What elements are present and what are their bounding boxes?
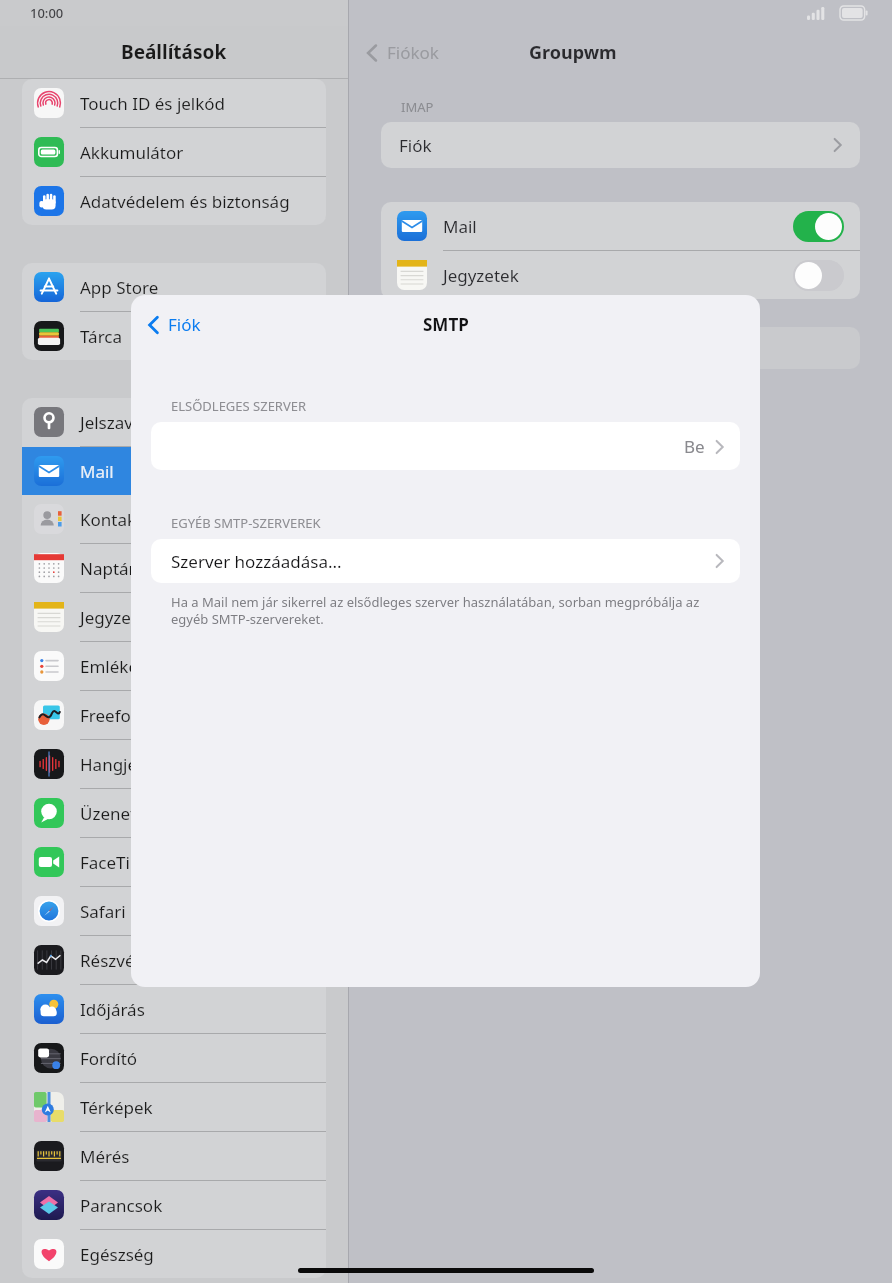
button[interactable]: Be bbox=[151, 422, 740, 470]
button[interactable]: Időjárás bbox=[22, 985, 326, 1033]
staticText: Mail bbox=[443, 215, 477, 238]
button[interactable]: Mail bbox=[22, 447, 326, 495]
staticText: Akkumulátor bbox=[80, 141, 184, 164]
staticText: Jegyzetek bbox=[443, 264, 519, 287]
button[interactable]: Hangjegyzetek bbox=[22, 740, 326, 788]
button[interactable]: Touch ID és jelkód bbox=[22, 79, 326, 127]
button[interactable]: Jelszavak bbox=[22, 398, 326, 446]
staticText: Fiók bbox=[168, 313, 201, 336]
button[interactable]: Jegyzetek bbox=[22, 593, 326, 641]
button[interactable]: Mail bbox=[381, 202, 860, 250]
button[interactable]: Egészség bbox=[22, 1230, 326, 1278]
staticText: FaceTime bbox=[80, 851, 156, 874]
staticText: Szerver hozzáadása... bbox=[171, 550, 342, 573]
button[interactable]: Emlékeztetők bbox=[22, 642, 326, 690]
staticText: Üzenetek bbox=[80, 802, 155, 825]
button[interactable]: Adatvédelem és biztonság bbox=[22, 177, 326, 225]
staticText: Safari bbox=[80, 900, 126, 923]
button[interactable]: Safari bbox=[22, 887, 326, 935]
button[interactable]: Fiók bbox=[381, 122, 860, 168]
staticText: Be bbox=[684, 435, 705, 458]
button[interactable]: App Store bbox=[22, 263, 326, 311]
staticText: SMTP bbox=[423, 313, 469, 336]
staticText: Beállítások bbox=[121, 39, 227, 65]
button[interactable]: Fiókok bbox=[365, 41, 439, 64]
button[interactable]: Freeform bbox=[22, 691, 326, 739]
staticText: Részvények bbox=[80, 949, 173, 972]
staticText: Freeform bbox=[80, 704, 154, 727]
button[interactable]: Parancsok bbox=[22, 1181, 326, 1229]
button[interactable]: Kontaktok bbox=[22, 495, 326, 543]
staticText: 10:00 bbox=[30, 4, 64, 22]
button[interactable]: Szerver hozzáadása... bbox=[151, 539, 740, 583]
staticText: Időjárás bbox=[80, 998, 145, 1021]
button[interactable]: Üzenetek bbox=[22, 789, 326, 837]
staticText: Groupwm bbox=[529, 40, 617, 65]
staticText: Kontaktok bbox=[80, 508, 162, 531]
staticText: Fiók bbox=[399, 134, 432, 157]
staticText: Parancsok bbox=[80, 1194, 163, 1217]
staticText: EGYÉB SMTP-SZERVEREK bbox=[171, 514, 321, 532]
button[interactable]: Fiók bbox=[147, 313, 201, 336]
staticText: Jelszavak bbox=[80, 411, 152, 434]
button[interactable]: Naptár bbox=[22, 544, 326, 592]
button[interactable]: Jegyzetek bbox=[381, 251, 860, 299]
staticText: IMAP bbox=[401, 98, 434, 116]
button[interactable]: Akkumulátor bbox=[22, 128, 326, 176]
staticText: Naptár bbox=[80, 557, 136, 580]
staticText: Adatvédelem és biztonság bbox=[80, 190, 290, 213]
button[interactable]: Mérés bbox=[22, 1132, 326, 1180]
button[interactable]: Bekapcsolva bbox=[793, 211, 844, 242]
staticText: Emlékeztetők bbox=[80, 655, 188, 678]
staticText: Touch ID és jelkód bbox=[80, 92, 226, 115]
staticText: Fiókok bbox=[387, 41, 439, 64]
staticText: App Store bbox=[80, 276, 159, 299]
staticText: Hangjegyzetek bbox=[80, 753, 199, 776]
staticText: Tárca bbox=[80, 325, 123, 348]
button[interactable]: Tárca bbox=[22, 312, 326, 360]
staticText: Jegyzetek bbox=[80, 606, 156, 629]
button[interactable]: Térképek bbox=[22, 1083, 326, 1131]
staticText: Egészség bbox=[80, 1243, 154, 1266]
button[interactable]: Kikapcsolva bbox=[793, 260, 844, 291]
button[interactable]: Részvények bbox=[22, 936, 326, 984]
button[interactable]: Fordító bbox=[22, 1034, 326, 1082]
staticText: Térképek bbox=[80, 1096, 153, 1119]
button[interactable]: FaceTime bbox=[22, 838, 326, 886]
button[interactable] bbox=[381, 327, 860, 369]
staticText: Ha a Mail nem jár sikerrel az elsődleges… bbox=[171, 593, 720, 628]
staticText: ELSŐDLEGES SZERVER bbox=[171, 397, 307, 415]
staticText: Fordító bbox=[80, 1047, 138, 1070]
staticText: Mail bbox=[80, 460, 114, 483]
staticText: Mérés bbox=[80, 1145, 130, 1168]
